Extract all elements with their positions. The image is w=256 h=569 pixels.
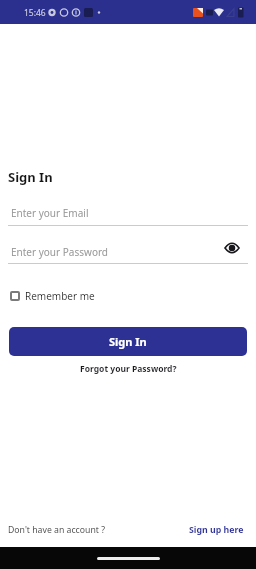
staticText: Sign up here	[189, 524, 244, 536]
staticText: Don't have an account ?	[8, 524, 105, 536]
button[interactable]: Forgot your Password?	[0, 363, 256, 375]
staticText: Forgot your Password?	[80, 363, 177, 375]
button[interactable]: Sign In	[9, 327, 247, 356]
staticText: Sign In	[8, 168, 53, 186]
button[interactable]	[224, 242, 240, 254]
button[interactable]: Remember me	[10, 289, 95, 303]
staticText: 15:46	[24, 7, 46, 19]
staticText: Enter your Email	[11, 206, 89, 220]
staticText: Enter your Password	[11, 245, 109, 259]
staticText: Sign In	[109, 334, 147, 349]
button[interactable]: Sign up here	[189, 524, 244, 536]
staticText: Remember me	[25, 289, 95, 303]
